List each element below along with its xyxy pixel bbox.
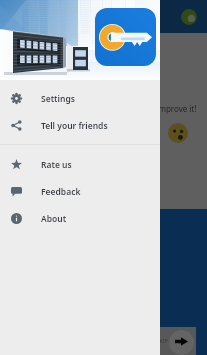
staticText: Help us improve it! [126, 103, 197, 114]
button[interactable]: Feedback [0, 178, 160, 205]
staticText: Tell your friends [41, 120, 108, 132]
button[interactable]: Language [180, 8, 198, 26]
button[interactable]: Settings [0, 85, 160, 112]
button[interactable]: Next [169, 330, 194, 355]
button[interactable]: Rate us [0, 151, 160, 178]
button[interactable]: About [0, 205, 160, 232]
staticText: Rate us [41, 159, 72, 171]
staticText: SKIP [157, 338, 168, 345]
staticText: Feedback [41, 186, 81, 198]
staticText: Settings [41, 93, 75, 105]
staticText: About [41, 213, 67, 225]
button[interactable]: Tell your friends [0, 112, 160, 139]
